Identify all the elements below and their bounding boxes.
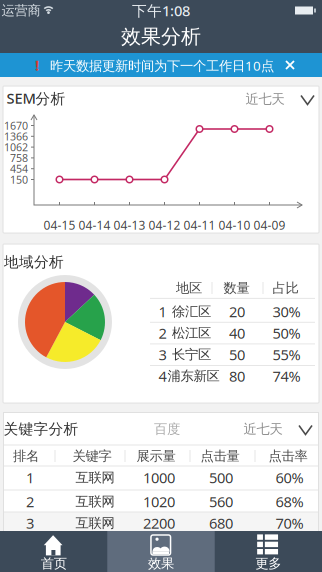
staticText: 效果 [148, 555, 174, 572]
staticText: 2 [26, 492, 34, 511]
staticText: 徐汇区 [172, 303, 211, 320]
staticText: 互联网 [75, 515, 114, 531]
staticText: 排名 [13, 448, 39, 464]
staticText: 560 [209, 492, 233, 511]
staticText: 70% [275, 513, 303, 533]
staticText: 04-10 [218, 217, 250, 233]
staticText: 展示量 [136, 448, 175, 464]
staticText: 昨天数据更新时间为下一个工作日10点 [50, 57, 274, 74]
staticText: 04-12 [148, 217, 180, 233]
staticText: 点击量 [200, 448, 239, 464]
staticText: 互联网 [75, 469, 114, 486]
staticText: 454 [10, 162, 28, 176]
staticText: 近七天 [243, 421, 282, 437]
staticText: 1670 [4, 118, 28, 133]
staticText: 百度 [154, 421, 180, 437]
staticText: 04-13 [113, 217, 145, 233]
staticText: 60% [275, 468, 303, 487]
staticText: 数量 [223, 280, 249, 296]
staticText: 更多 [255, 555, 281, 572]
staticText: 4 [158, 366, 166, 386]
staticText: 下午1:08 [132, 1, 190, 20]
staticText: 1366 [4, 129, 28, 143]
staticText: 松江区 [172, 325, 211, 341]
staticText: 地域分析 [4, 253, 64, 271]
staticText: 3 [158, 345, 166, 364]
staticText: 关键字分析 [3, 420, 78, 438]
staticText: 68% [275, 492, 303, 511]
staticText: 758 [10, 151, 28, 165]
staticText: 40 [229, 323, 245, 343]
staticText: 1 [26, 468, 34, 487]
button[interactable]: 首页 [0, 531, 107, 572]
staticText: 首页 [41, 555, 67, 572]
staticText: 04-11 [183, 217, 215, 233]
staticText: 1020 [143, 492, 175, 511]
staticText: 20 [229, 302, 245, 321]
staticText: 80 [229, 366, 245, 386]
staticText: 2200 [143, 513, 175, 533]
staticText: 关键字 [72, 448, 111, 464]
button[interactable]: 近七天 [219, 86, 319, 112]
staticText: 30% [272, 302, 300, 321]
staticText: 运营商 [1, 2, 40, 19]
staticText: 55% [272, 345, 300, 364]
staticText: 占比 [272, 280, 298, 296]
button[interactable]: 效果 [107, 531, 215, 572]
staticText: ! [35, 55, 39, 75]
staticText: 50 [229, 345, 245, 364]
staticText: 500 [209, 468, 233, 487]
button[interactable]: 更多 [215, 531, 322, 572]
staticText: 地区 [176, 280, 202, 296]
staticText: 1062 [4, 140, 28, 154]
staticText: 1000 [143, 468, 175, 487]
button[interactable]: 百度 [137, 417, 197, 441]
staticText: 互联网 [75, 493, 114, 510]
staticText: 04-15 [43, 217, 75, 233]
staticText: 680 [209, 513, 233, 533]
staticText: 50% [272, 323, 300, 343]
staticText: 浦东新区 [167, 368, 219, 384]
staticText: 3 [26, 513, 34, 533]
staticText: 1 [158, 302, 166, 321]
staticText: 2 [158, 323, 166, 343]
staticText: 04-14 [78, 217, 110, 233]
staticText: 近七天 [245, 91, 284, 107]
button[interactable]: 关闭通知 [0, 53, 322, 77]
staticText: 04-09 [253, 217, 285, 233]
staticText: 点击率 [268, 448, 307, 464]
staticText: 150 [10, 172, 28, 187]
staticText: SEM分析 [6, 88, 65, 108]
staticText: 效果分析 [121, 24, 201, 49]
staticText: 长宁区 [172, 346, 211, 363]
button[interactable]: 近七天 [219, 416, 319, 442]
staticText: 74% [272, 366, 300, 386]
